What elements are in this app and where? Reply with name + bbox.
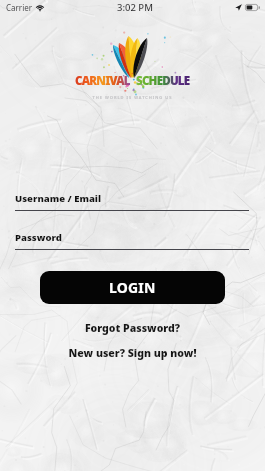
staticText: THE WORLD IS WATCHING US	[0, 95, 265, 100]
button[interactable]: Username / Email	[15, 192, 249, 211]
staticText: Carrier	[6, 2, 33, 13]
staticText: Password	[15, 231, 62, 244]
staticText: SCHEDULE	[136, 73, 190, 89]
staticText: 3:02 PM	[117, 1, 153, 14]
staticText: CARNIVAL	[75, 73, 130, 89]
button[interactable]: New user? Sign up now!	[0, 346, 265, 360]
staticText: LOGIN	[109, 278, 156, 297]
button[interactable]: LOGIN	[40, 271, 225, 304]
button[interactable]: Password	[15, 231, 249, 250]
button[interactable]: Forgot Password?	[0, 321, 265, 335]
staticText: Username / Email	[15, 192, 102, 205]
